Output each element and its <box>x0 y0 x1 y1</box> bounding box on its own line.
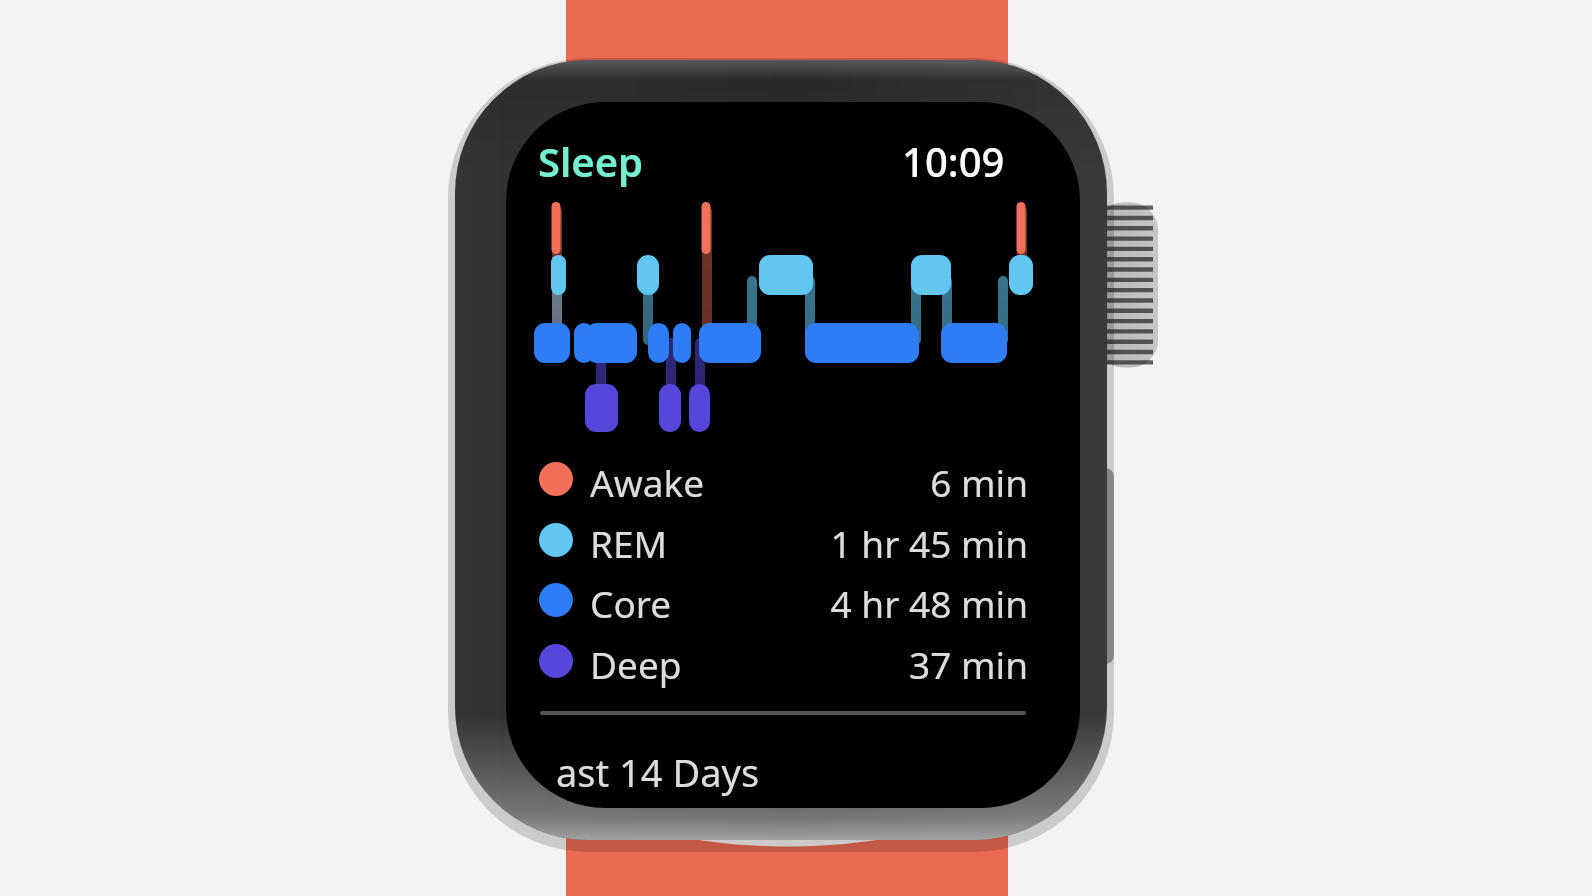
staticText: Sleep <box>538 134 644 188</box>
button[interactable]: Sleep <box>538 134 644 188</box>
button[interactable]: ast 14 Days <box>556 746 760 798</box>
button[interactable]: Side button <box>1094 468 1116 664</box>
button[interactable]: Deep <box>536 639 1028 689</box>
button[interactable]: Digital Crown <box>1096 202 1158 367</box>
staticText: 1 hr 45 min <box>830 518 1028 568</box>
staticText: Core <box>590 578 672 628</box>
staticText: 10:09 <box>902 134 1005 188</box>
staticText: Deep <box>590 639 682 689</box>
staticText: Awake <box>590 457 705 507</box>
staticText: 4 hr 48 min <box>830 578 1028 628</box>
button[interactable]: Core <box>536 578 1028 628</box>
staticText: ast 14 Days <box>556 746 760 798</box>
staticText: 37 min <box>909 639 1028 689</box>
button[interactable]: Awake <box>536 457 1028 507</box>
staticText: REM <box>590 518 668 568</box>
button[interactable]: REM <box>536 518 1028 568</box>
staticText: 6 min <box>930 457 1028 507</box>
